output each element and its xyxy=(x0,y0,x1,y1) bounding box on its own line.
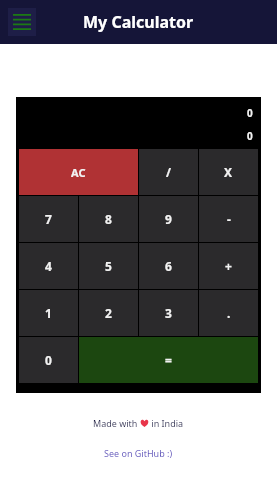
staticText: 4 xyxy=(45,258,52,274)
staticText: 7 xyxy=(45,211,52,227)
staticText: 0 xyxy=(247,106,253,120)
button[interactable]: See on GitHub :) xyxy=(102,445,175,461)
button[interactable]: Menu xyxy=(8,8,36,36)
button[interactable]: = xyxy=(79,337,258,383)
staticText: 2 xyxy=(105,305,112,321)
button[interactable]: 6 xyxy=(139,243,198,289)
staticText: = xyxy=(165,352,172,368)
button[interactable]: 5 xyxy=(79,243,138,289)
staticText: Made with xyxy=(93,417,140,429)
staticText: in India xyxy=(149,417,184,429)
staticText: My Calculator xyxy=(83,11,194,33)
staticText: 9 xyxy=(165,211,172,227)
staticText: X xyxy=(224,164,233,180)
staticText: - xyxy=(227,211,231,227)
button[interactable]: AC xyxy=(19,149,138,195)
button[interactable]: 1 xyxy=(19,290,78,336)
button[interactable]: 2 xyxy=(79,290,138,336)
staticText: / xyxy=(166,164,171,180)
button[interactable]: 7 xyxy=(19,196,78,242)
staticText: AC xyxy=(71,165,86,180)
button[interactable]: 9 xyxy=(139,196,198,242)
staticText: 8 xyxy=(105,211,112,227)
button[interactable]: - xyxy=(199,196,258,242)
button[interactable]: / xyxy=(139,149,198,195)
button[interactable]: + xyxy=(199,243,258,289)
staticText: 0 xyxy=(247,129,253,143)
button[interactable]: 0 xyxy=(19,337,78,383)
button[interactable]: X xyxy=(199,149,258,195)
staticText: 3 xyxy=(165,305,172,321)
staticText: 5 xyxy=(105,258,112,274)
staticText: 1 xyxy=(45,305,52,321)
button[interactable]: . xyxy=(199,290,258,336)
staticText: See on GitHub :) xyxy=(104,447,173,459)
staticText: . xyxy=(227,305,231,321)
staticText: 6 xyxy=(165,258,172,274)
staticText: 0 xyxy=(45,352,52,368)
button[interactable]: 3 xyxy=(139,290,198,336)
staticText: + xyxy=(225,258,232,274)
button[interactable]: 8 xyxy=(79,196,138,242)
button[interactable]: 4 xyxy=(19,243,78,289)
